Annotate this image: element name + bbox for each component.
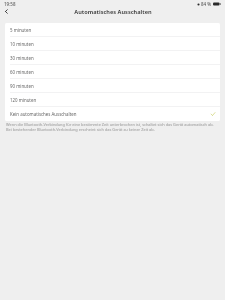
button[interactable]: 30 minuten xyxy=(5,51,220,64)
button[interactable]: 60 minuten xyxy=(5,65,220,78)
staticText: Kein automatisches Ausschalten xyxy=(10,111,77,117)
button[interactable]: 5 minuten xyxy=(5,23,220,36)
other: Selected xyxy=(210,111,216,117)
staticText: 120 minuten xyxy=(10,97,37,103)
staticText: 10 minuten xyxy=(10,41,34,47)
button[interactable]: 90 minuten xyxy=(5,79,220,92)
button[interactable]: 10 minuten xyxy=(5,37,220,50)
staticText: Automatisches Ausschalten xyxy=(74,8,152,16)
staticText: 84 % xyxy=(201,1,212,7)
button[interactable]: Back xyxy=(0,5,12,17)
staticText: 60 minuten xyxy=(10,69,34,75)
staticText: 5 minuten xyxy=(10,27,32,33)
button[interactable]: 120 minuten xyxy=(5,93,220,106)
staticText: 30 minuten xyxy=(10,55,34,61)
staticText: 90 minuten xyxy=(10,83,34,89)
staticText: 19:58 xyxy=(4,1,16,7)
staticText: Wenn die Bluetooth-Verbindung für eine b… xyxy=(6,122,219,132)
button[interactable]: Kein automatisches Ausschalten xyxy=(5,107,220,121)
